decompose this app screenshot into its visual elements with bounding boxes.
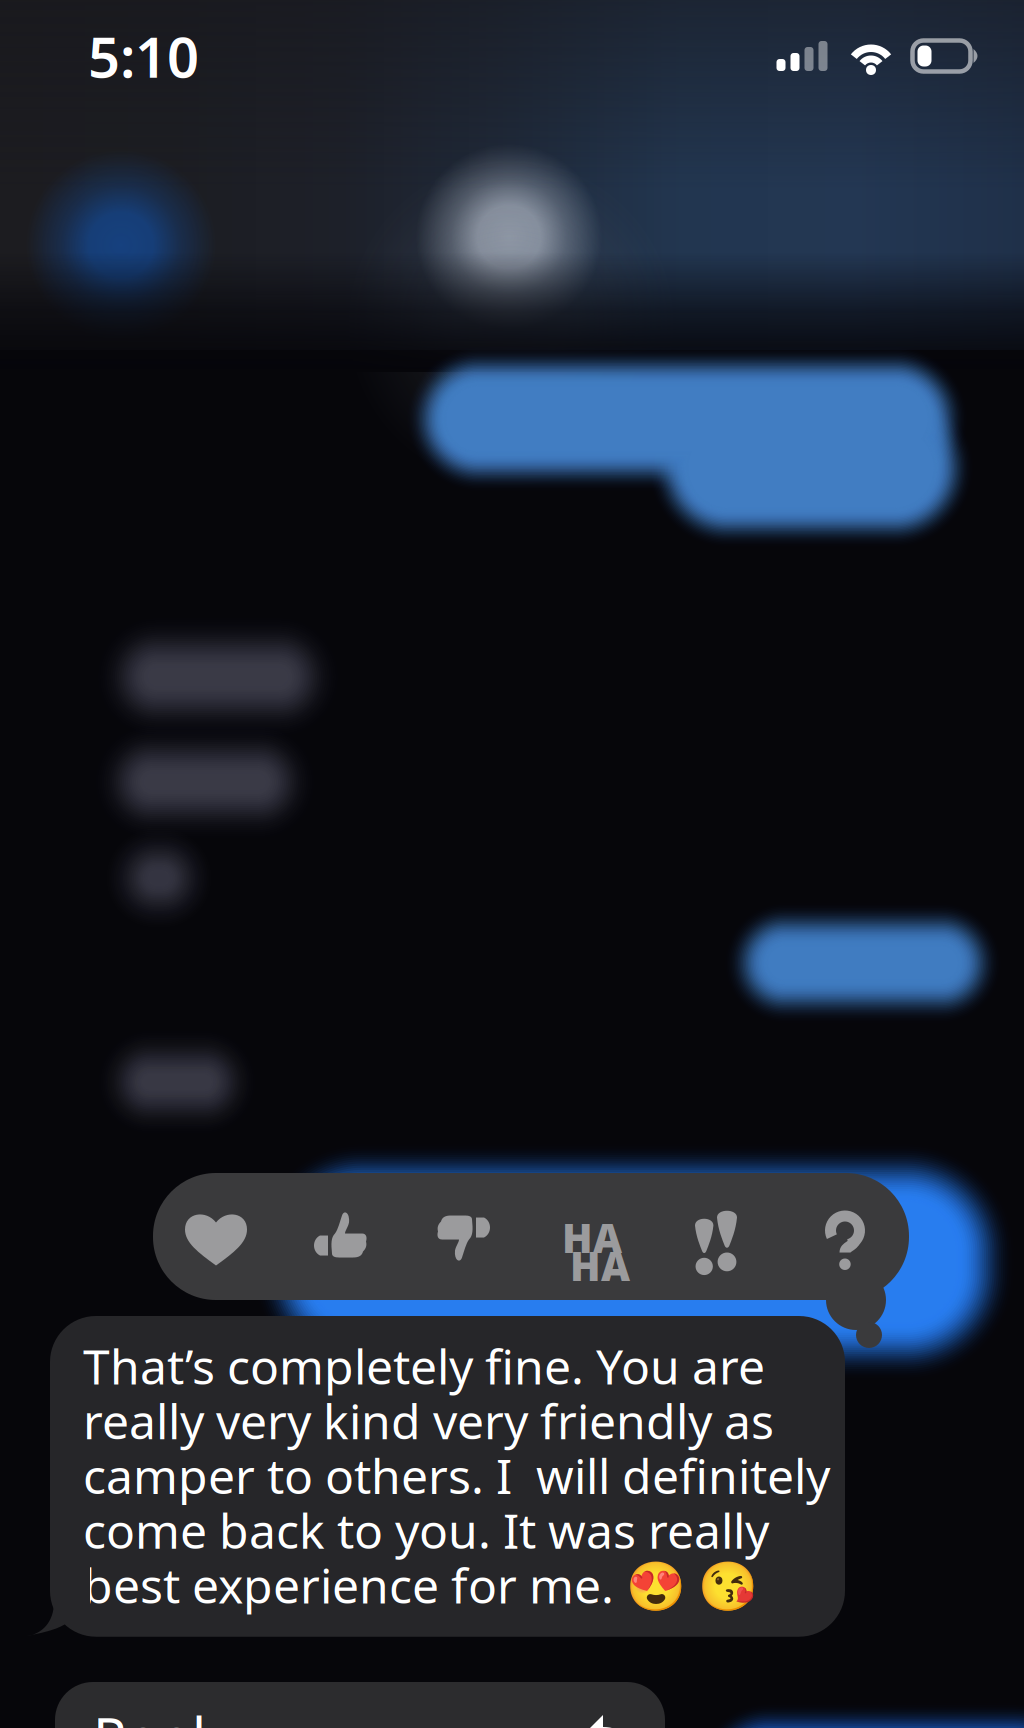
- button[interactable]: Question mark: [783, 1173, 909, 1300]
- button[interactable]: Like: [279, 1173, 405, 1300]
- button[interactable]: Exclamation: [657, 1173, 783, 1300]
- button[interactable]: Love: [153, 1173, 279, 1300]
- staticText: HA: [570, 1239, 630, 1292]
- button[interactable]: Haha: [531, 1173, 657, 1300]
- button[interactable]: Reply: [55, 1682, 665, 1728]
- staticText: 5:10: [88, 19, 199, 93]
- staticText: HA: [562, 1211, 622, 1264]
- button[interactable]: Dislike: [405, 1173, 531, 1300]
- staticText: Reply: [93, 1700, 234, 1728]
- staticText: That’s completely fine. You are really v…: [83, 1334, 830, 1617]
